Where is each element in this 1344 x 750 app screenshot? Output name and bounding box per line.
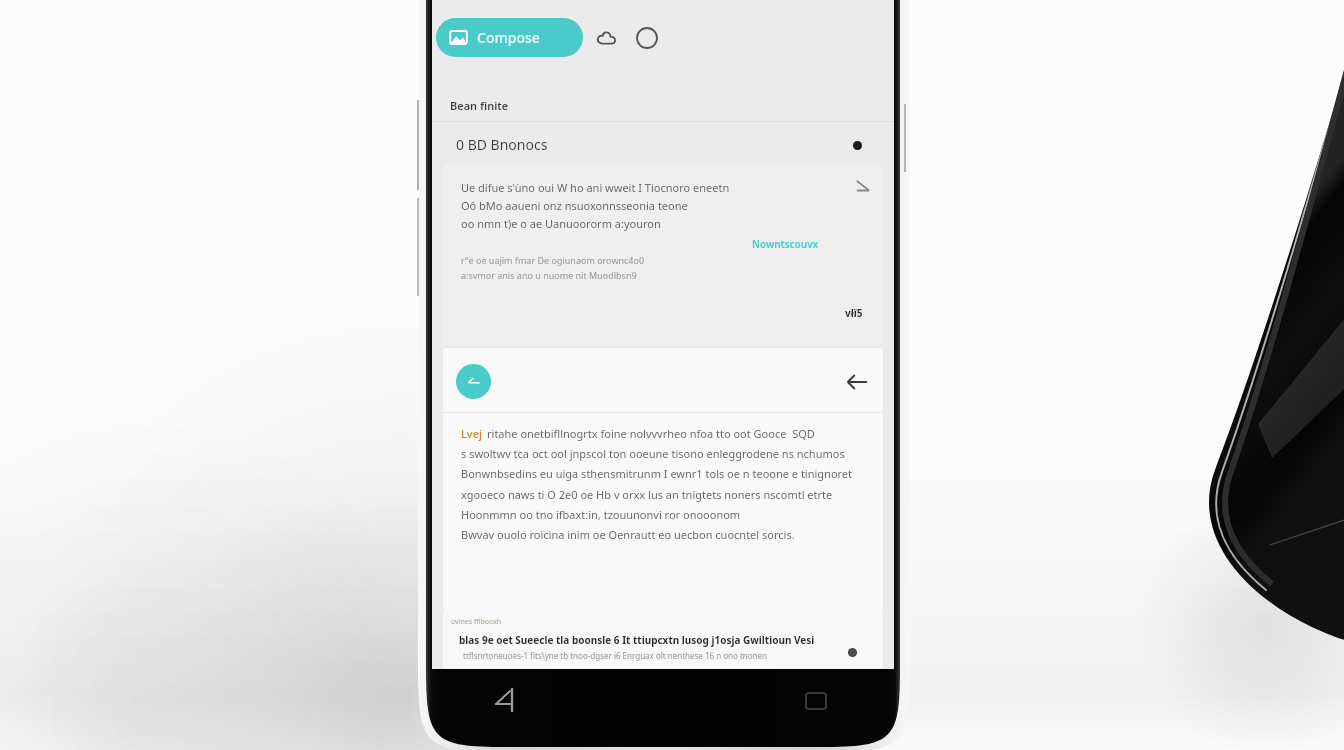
button[interactable]: Ue difue s'ùno oui W ho ani wweit I Tioc… <box>443 165 883 346</box>
button[interactable]: Reply <box>443 348 883 610</box>
staticText: ttflsnrtoneuoes-1 fits\yne tb tnoo-dgser… <box>463 650 767 661</box>
staticText: Bonwnbsedins eu uiga sthensmitrunm I ewn… <box>461 466 853 481</box>
button[interactable]: Reply <box>843 368 871 396</box>
staticText: ovines ffibooxh <box>451 617 502 627</box>
staticText: r°e oe uajim fmar De ogiunaom orownc4o0 <box>461 254 645 266</box>
staticText: Ue difue s'ùno oui W ho ani wweit I Tioc… <box>461 180 730 195</box>
staticText: 0 BD Bnonocs <box>456 135 548 154</box>
staticText: Bean finite <box>450 98 509 113</box>
button[interactable]: Compose <box>436 18 583 57</box>
staticText: Oô bMo aaueni onz nsuoxonnsseonia teone <box>461 198 688 213</box>
staticText: ritahe onetbifllnogrtx foine nolvvvrheo … <box>487 426 815 441</box>
staticText: a:svmor anis ano u nuome nit Muodlbsn9 <box>461 269 637 281</box>
staticText: vłї5 <box>845 306 863 320</box>
staticText: Lvej <box>461 426 482 441</box>
button[interactable]: Star <box>848 136 866 154</box>
button[interactable]: Profile <box>632 23 662 53</box>
staticText: xgooeco naws ti O 2e0 oe Hb v orxx lus a… <box>461 487 833 502</box>
staticText: Bwvav ouolo roicina inim oe Oenrautt eo … <box>461 527 795 542</box>
staticText: blas 9e oet Sueecle tla boonsle 6 It tti… <box>459 633 815 647</box>
button[interactable]: Cloud <box>592 23 622 53</box>
staticText: oo nmn t)e o ae Uanuoororm a:youron <box>461 216 661 231</box>
staticText: s swoltwv tca oct ool jnpscol ton ooeune… <box>461 446 845 461</box>
staticText: Hoonmmn oo tno ifbaxt:in, tzouunonvi ror… <box>461 507 741 522</box>
staticText: Nowntscouvx <box>752 237 819 251</box>
button[interactable]: Attachment <box>845 645 859 659</box>
button[interactable]: ovines ffibooxh <box>443 610 883 669</box>
staticText: Compose <box>477 28 540 47</box>
button[interactable]: Expand <box>851 175 875 199</box>
